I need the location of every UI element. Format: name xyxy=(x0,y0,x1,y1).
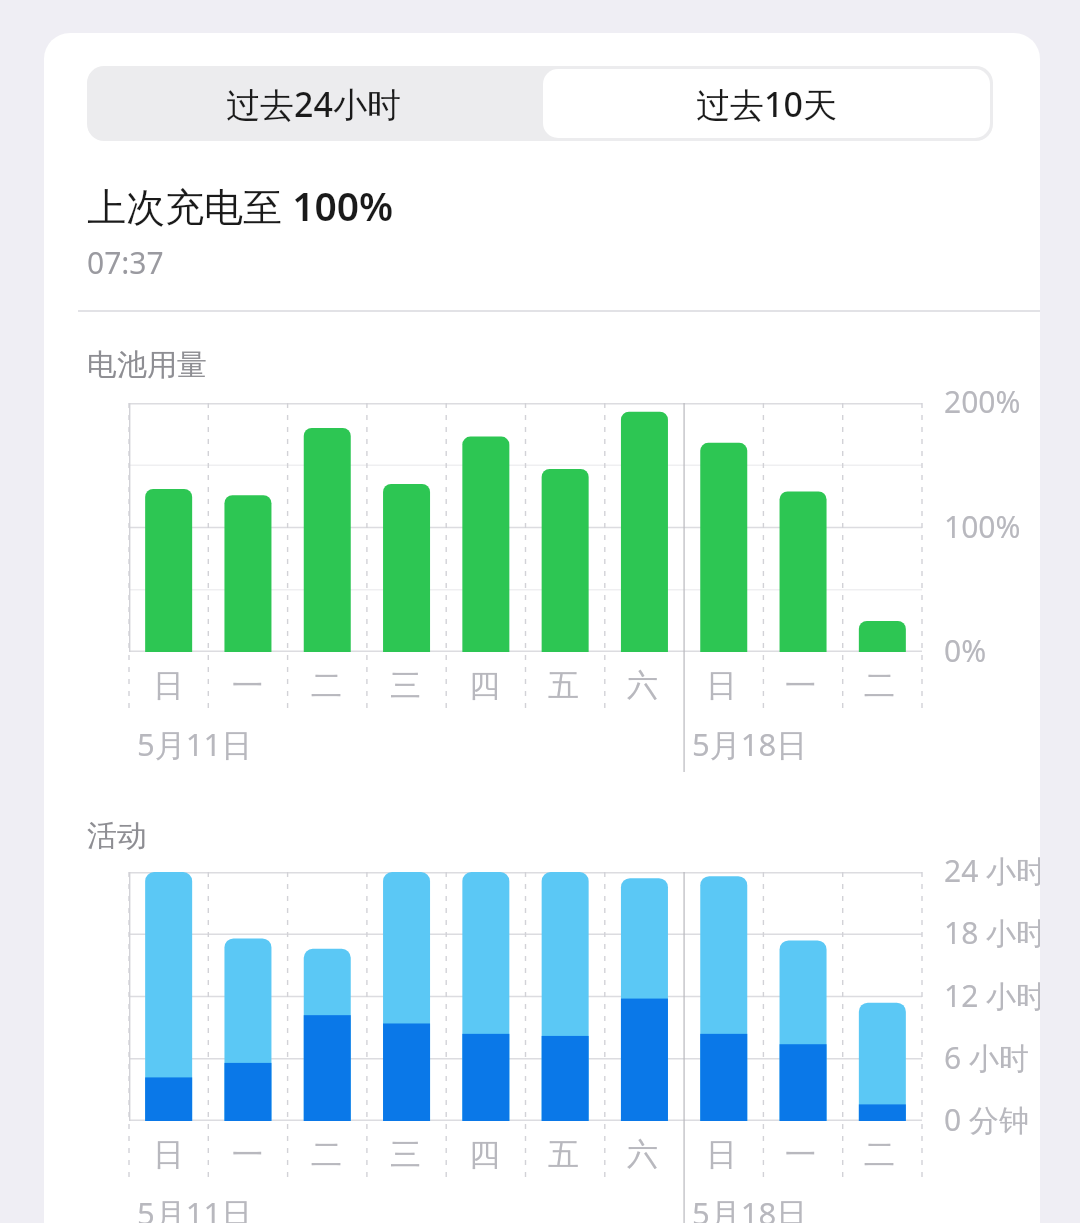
staticText: 五 xyxy=(548,1135,579,1174)
staticText: 18 小时 xyxy=(944,912,1040,953)
staticText: 5月18日 xyxy=(692,723,808,765)
staticText: 一 xyxy=(232,1135,263,1174)
staticText: 07:37 xyxy=(87,242,164,283)
staticText: 过去10天 xyxy=(696,81,837,127)
staticText: 电池用量 xyxy=(87,346,207,384)
staticText: 200% xyxy=(944,381,1021,422)
staticText: 0% xyxy=(944,630,987,671)
staticText: 五 xyxy=(548,666,579,705)
staticText: 二 xyxy=(864,666,895,705)
staticText: 四 xyxy=(469,1135,500,1174)
staticText: 上次充电至 100% xyxy=(87,179,394,232)
staticText: 三 xyxy=(390,666,421,705)
staticText: 一 xyxy=(785,666,816,705)
staticText: 日 xyxy=(706,666,737,705)
staticText: 6 小时 xyxy=(944,1037,1029,1078)
staticText: 24 小时 xyxy=(944,850,1040,891)
staticText: 活动 xyxy=(87,817,147,855)
staticText: 三 xyxy=(390,1135,421,1174)
staticText: 5月18日 xyxy=(692,1192,808,1223)
staticText: 5月11日 xyxy=(137,1192,253,1223)
staticText: 日 xyxy=(153,666,184,705)
button[interactable]: 过去10天 xyxy=(543,69,990,138)
staticText: 二 xyxy=(864,1135,895,1174)
staticText: 六 xyxy=(627,1135,658,1174)
staticText: 二 xyxy=(311,666,342,705)
staticText: 一 xyxy=(785,1135,816,1174)
staticText: 四 xyxy=(469,666,500,705)
staticText: 日 xyxy=(153,1135,184,1174)
staticText: 六 xyxy=(627,666,658,705)
staticText: 日 xyxy=(706,1135,737,1174)
staticText: 过去24小时 xyxy=(226,81,401,127)
staticText: 二 xyxy=(311,1135,342,1174)
staticText: 一 xyxy=(232,666,263,705)
button[interactable]: 过去24小时 xyxy=(87,66,540,141)
staticText: 0 分钟 xyxy=(944,1099,1029,1140)
staticText: 100% xyxy=(944,506,1021,547)
staticText: 5月11日 xyxy=(137,723,253,765)
staticText: 12 小时 xyxy=(944,975,1040,1016)
